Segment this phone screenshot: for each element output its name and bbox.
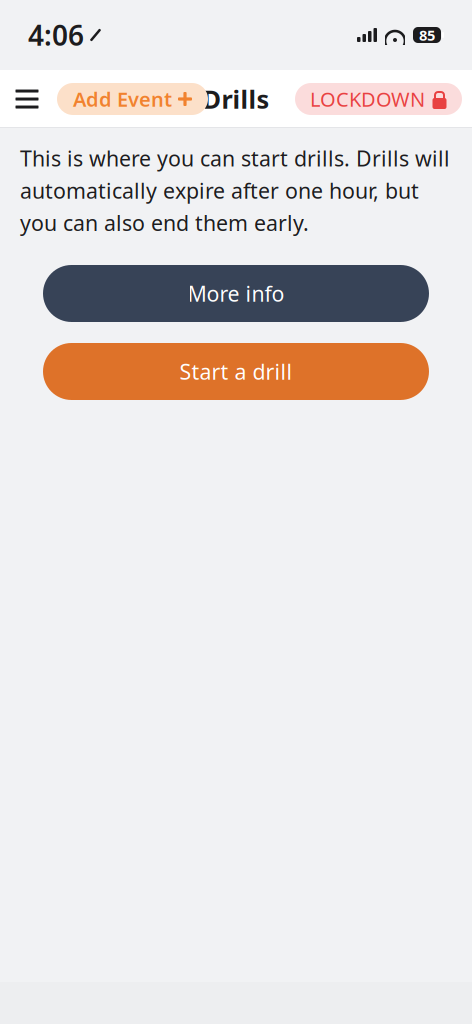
staticText: 4:06 bbox=[28, 16, 84, 54]
staticText: This is where you can start drills. Dril… bbox=[20, 144, 450, 237]
staticText: 85 bbox=[419, 25, 435, 45]
button[interactable]: More info bbox=[43, 265, 429, 322]
button[interactable]: Start a drill bbox=[43, 343, 429, 400]
button[interactable]: Add Event bbox=[57, 83, 208, 115]
staticText: Add Event bbox=[73, 86, 172, 112]
staticText: Drills bbox=[202, 82, 269, 116]
staticText: LOCKDOWN bbox=[310, 86, 425, 112]
staticText: More info bbox=[187, 279, 284, 308]
staticText: Start a drill bbox=[179, 357, 292, 386]
button[interactable]: Menu bbox=[10, 82, 44, 116]
button[interactable]: LOCKDOWN bbox=[295, 83, 462, 115]
